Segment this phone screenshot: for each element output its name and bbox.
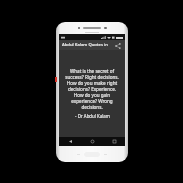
button[interactable]: Home xyxy=(81,137,103,146)
staticText: - Dr Abdul Kalam xyxy=(75,113,110,119)
staticText: Abdul Kalam Quotes in English xyxy=(62,42,113,48)
button[interactable]: Back xyxy=(59,137,81,146)
button[interactable]: Recent apps xyxy=(103,137,125,146)
button[interactable]: Share xyxy=(113,41,122,50)
button[interactable]: What is the secret of success? Right dec… xyxy=(59,50,125,137)
staticText: What is the secret of success? Right dec… xyxy=(63,68,121,110)
